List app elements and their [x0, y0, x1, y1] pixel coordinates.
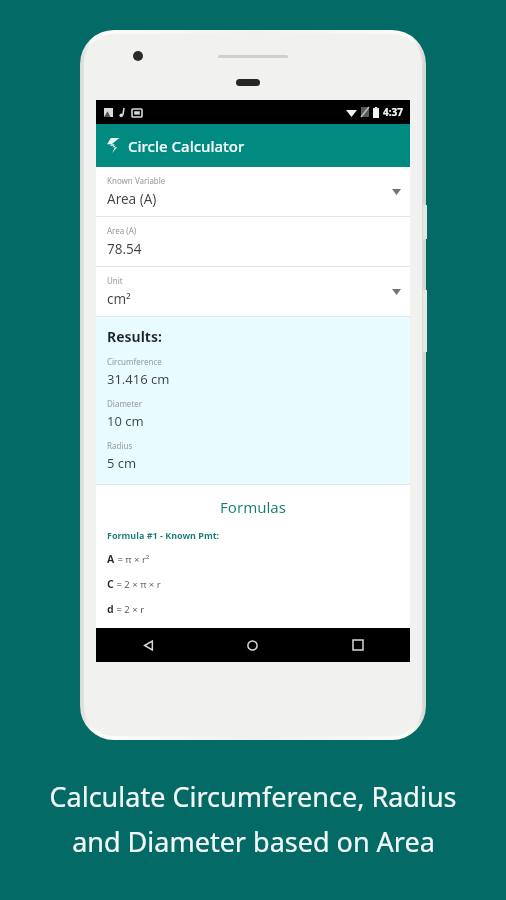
staticText: Radius	[107, 440, 133, 451]
staticText: = 2 × r	[114, 603, 145, 616]
staticText: Calculate Circumference, Radius	[49, 778, 457, 815]
button[interactable]: Back	[96, 628, 200, 662]
staticText: and Diameter based on Area	[72, 823, 435, 860]
button[interactable]: Home	[200, 628, 305, 662]
staticText: cm²	[107, 290, 131, 308]
staticText: Area (A)	[107, 190, 157, 208]
button[interactable]: Area (A)	[96, 217, 410, 266]
staticText: Circle Calculator	[128, 136, 245, 156]
staticText: Formulas	[96, 497, 410, 517]
staticText: = π × r²	[115, 553, 150, 566]
staticText: = 2 × π × r	[114, 578, 161, 591]
staticText: A	[107, 552, 115, 566]
staticText: d	[107, 602, 114, 616]
staticText: C	[107, 577, 114, 591]
staticText: 4:37	[383, 105, 403, 119]
button[interactable]: Known Variable	[96, 167, 410, 216]
staticText: Known Variable	[107, 175, 166, 186]
staticText: Unit	[107, 275, 123, 286]
staticText: 78.54	[107, 240, 142, 258]
button[interactable]: Unit	[96, 267, 410, 316]
staticText: Diameter	[107, 398, 143, 409]
staticText: Formula #1 - Known Pmt:	[107, 529, 220, 541]
staticText: Circumference	[107, 356, 162, 367]
staticText: 10 cm	[107, 412, 144, 430]
staticText: 5 cm	[107, 454, 137, 472]
staticText: Results:	[107, 327, 162, 346]
button[interactable]: Recent apps	[305, 628, 410, 662]
staticText: 31.416 cm	[107, 370, 170, 388]
staticText: Area (A)	[107, 225, 137, 236]
